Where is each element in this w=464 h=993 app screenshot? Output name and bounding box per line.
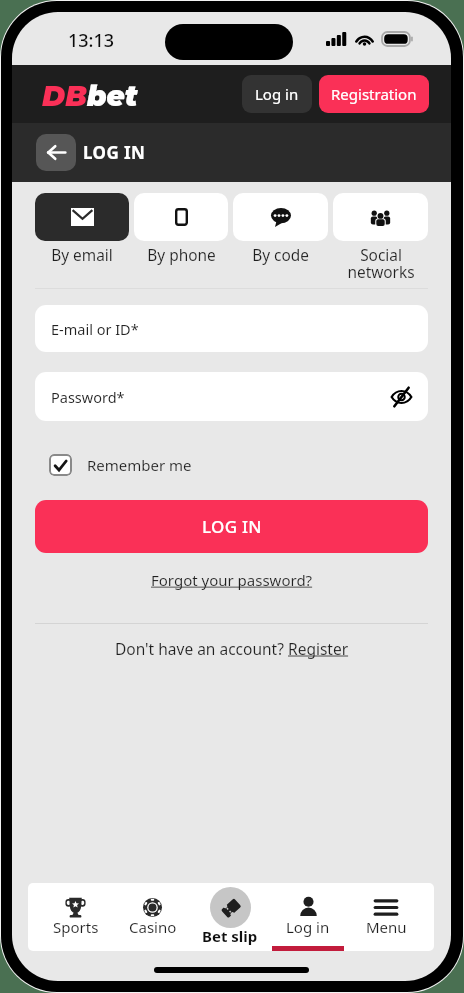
staticText: Bet slip [202, 926, 258, 946]
button[interactable]: Log in [269, 883, 347, 951]
button[interactable]: Casino [114, 883, 191, 951]
button[interactable]: LOG IN [35, 500, 428, 553]
staticText: Log in [255, 84, 299, 104]
button[interactable]: Sports [37, 883, 114, 951]
button[interactable]: Password* [35, 372, 428, 421]
button[interactable]: Log in [242, 75, 312, 113]
button[interactable]: Menu [347, 883, 425, 951]
staticText: Social networks [347, 245, 415, 283]
button[interactable]: Forgot your password? [151, 570, 313, 590]
staticText: Don't have an account? [115, 638, 288, 659]
button[interactable]: Bet slip [191, 883, 269, 951]
button[interactable]: Register [288, 638, 349, 659]
button[interactable]: Registration [319, 75, 429, 113]
button[interactable]: By email [35, 193, 129, 266]
staticText: LOG IN [202, 515, 262, 538]
staticText: E-mail or ID* [51, 319, 139, 339]
button[interactable]: E-mail or ID* [35, 305, 428, 352]
staticText: 13:13 [68, 28, 115, 53]
staticText: Menu [366, 917, 407, 937]
button[interactable]: Show password [384, 380, 418, 414]
button[interactable]: Social networks [333, 193, 428, 283]
staticText: DB [42, 79, 87, 113]
button[interactable]: By code [233, 193, 328, 266]
staticText: Remember me [87, 455, 192, 475]
staticText: By code [252, 245, 309, 266]
staticText: By email [51, 245, 113, 266]
staticText: Casino [129, 917, 177, 937]
staticText: Log in [286, 917, 330, 937]
staticText: LOG IN [83, 141, 146, 164]
button[interactable]: By phone [134, 193, 228, 266]
button[interactable]: Remember me [49, 453, 414, 477]
button[interactable]: Back [36, 134, 76, 171]
staticText: Password* [51, 387, 125, 407]
staticText: By phone [147, 245, 216, 266]
staticText: Sports [53, 917, 99, 937]
staticText: bet [87, 79, 138, 113]
staticText: Registration [331, 84, 417, 104]
